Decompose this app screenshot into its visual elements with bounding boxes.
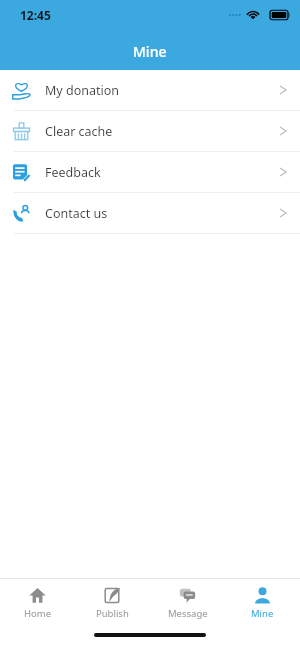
button[interactable]: Contact us <box>0 193 300 233</box>
staticText: Feedback <box>45 164 101 181</box>
staticText: Mine <box>251 607 274 620</box>
button[interactable]: Clear cache <box>0 111 300 151</box>
staticText: Message <box>168 607 208 620</box>
button[interactable]: Feedback <box>0 152 300 192</box>
staticText: Mine <box>133 42 167 61</box>
staticText: Publish <box>96 607 129 620</box>
button[interactable]: Message <box>150 579 225 627</box>
button[interactable]: Home <box>0 579 75 627</box>
staticText: Home <box>24 607 52 620</box>
staticText: My donation <box>45 82 119 99</box>
button[interactable]: My donation <box>0 70 300 110</box>
button[interactable]: Publish <box>75 579 150 627</box>
staticText: Clear cache <box>45 123 113 140</box>
button[interactable]: Mine <box>225 579 300 627</box>
staticText: 12:45 <box>20 7 51 23</box>
staticText: Contact us <box>45 205 108 222</box>
